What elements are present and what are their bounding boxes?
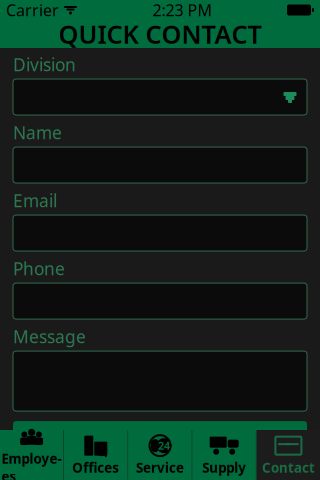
staticText: Phone: [13, 257, 65, 280]
staticText: QUICK CONTACT: [58, 17, 261, 51]
staticText: Offices: [72, 459, 119, 476]
button[interactable]: SUBMIT: [13, 421, 307, 459]
staticText: Name: [13, 121, 62, 144]
button[interactable]: Message field: [13, 351, 307, 411]
staticText: Service: [136, 459, 184, 476]
button[interactable]: Email field: [13, 215, 307, 251]
staticText: Carrier: [6, 0, 59, 21]
staticText: Email: [13, 189, 57, 212]
button[interactable]: Name field: [13, 147, 307, 183]
staticText: 24: [158, 439, 170, 453]
button[interactable]: Supply: [193, 430, 256, 480]
staticText: Contact: [262, 459, 315, 476]
button[interactable]: 24: [128, 430, 192, 480]
staticText: Division: [13, 53, 76, 76]
staticText: SUBMIT: [110, 422, 210, 458]
button[interactable]: Employees: [0, 430, 63, 480]
button[interactable]: Contact: [257, 430, 320, 480]
button[interactable]: Phone field: [13, 283, 307, 319]
staticText: Employees: [2, 450, 62, 480]
staticText: Supply: [202, 459, 246, 476]
staticText: Message: [13, 325, 86, 348]
button[interactable]: Division field: [13, 79, 307, 115]
staticText: 2:23 PM: [152, 0, 212, 21]
button[interactable]: Offices: [64, 430, 127, 480]
